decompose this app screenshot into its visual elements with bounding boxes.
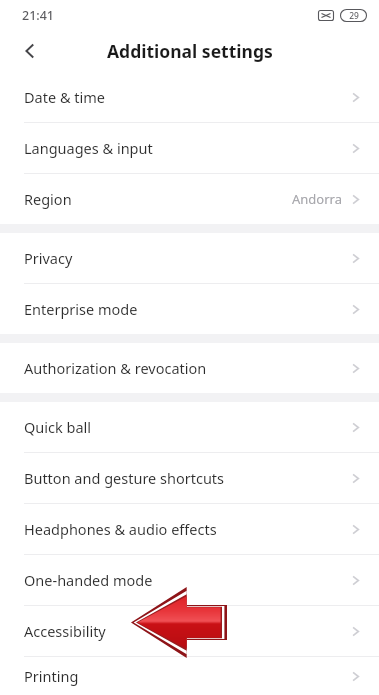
button[interactable]: Region bbox=[0, 174, 379, 224]
button[interactable]: Languages & input bbox=[0, 123, 379, 173]
staticText: Region bbox=[24, 189, 72, 209]
button[interactable]: Headphones & audio effects bbox=[0, 504, 379, 554]
staticText: Authorization & revocation bbox=[24, 358, 207, 378]
staticText: Privacy bbox=[24, 248, 73, 268]
button[interactable]: Enterprise mode bbox=[0, 284, 379, 334]
button[interactable]: Authorization & revocation bbox=[0, 343, 379, 393]
staticText: 21:41 bbox=[22, 7, 55, 24]
staticText: Accessibility bbox=[24, 621, 106, 641]
button[interactable]: Accessibility bbox=[0, 606, 379, 656]
button[interactable]: Button and gesture shortcuts bbox=[0, 453, 379, 503]
button[interactable]: Back bbox=[12, 33, 48, 69]
staticText: Andorra bbox=[292, 190, 342, 208]
staticText: Enterprise mode bbox=[24, 299, 138, 319]
staticText: Quick ball bbox=[24, 417, 92, 437]
staticText: Button and gesture shortcuts bbox=[24, 468, 225, 488]
staticText: 29 bbox=[349, 10, 359, 22]
button[interactable]: Privacy bbox=[0, 233, 379, 283]
button[interactable]: One-handed mode bbox=[0, 555, 379, 605]
button[interactable]: Quick ball bbox=[0, 402, 379, 452]
staticText: Printing bbox=[24, 666, 79, 686]
staticText: Additional settings bbox=[107, 39, 273, 63]
staticText: Headphones & audio effects bbox=[24, 519, 217, 539]
staticText: Date & time bbox=[24, 87, 105, 107]
staticText: One-handed mode bbox=[24, 570, 153, 590]
staticText: Languages & input bbox=[24, 138, 153, 158]
button[interactable]: Printing bbox=[0, 657, 379, 695]
button[interactable]: Date & time bbox=[0, 72, 379, 122]
